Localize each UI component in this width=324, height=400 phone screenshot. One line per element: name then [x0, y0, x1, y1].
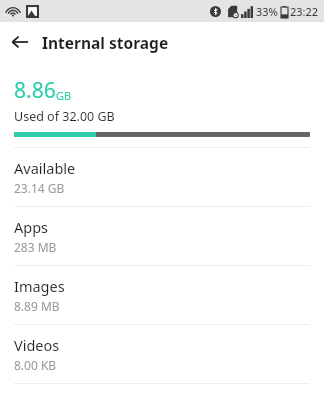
- staticText: Videos: [14, 335, 60, 355]
- staticText: 283 MB: [14, 239, 57, 255]
- staticText: 23.14 GB: [14, 180, 65, 196]
- button[interactable]: Apps: [0, 207, 324, 265]
- staticText: GB: [56, 88, 72, 103]
- button[interactable]: Images: [0, 266, 324, 324]
- button[interactable]: Available: [0, 148, 324, 206]
- button[interactable]: Back: [0, 22, 40, 62]
- staticText: Used of 32.00 GB: [14, 108, 115, 125]
- staticText: 8.89 MB: [14, 298, 60, 314]
- staticText: 8.00 KB: [14, 357, 57, 373]
- staticText: 33%: [256, 4, 278, 19]
- button[interactable]: Videos: [0, 325, 324, 383]
- staticText: Internal storage: [42, 32, 169, 53]
- staticText: 8.86: [14, 76, 56, 105]
- staticText: Apps: [14, 217, 49, 237]
- staticText: Images: [14, 276, 65, 296]
- staticText: 23:22: [290, 4, 319, 19]
- staticText: Available: [14, 158, 76, 178]
